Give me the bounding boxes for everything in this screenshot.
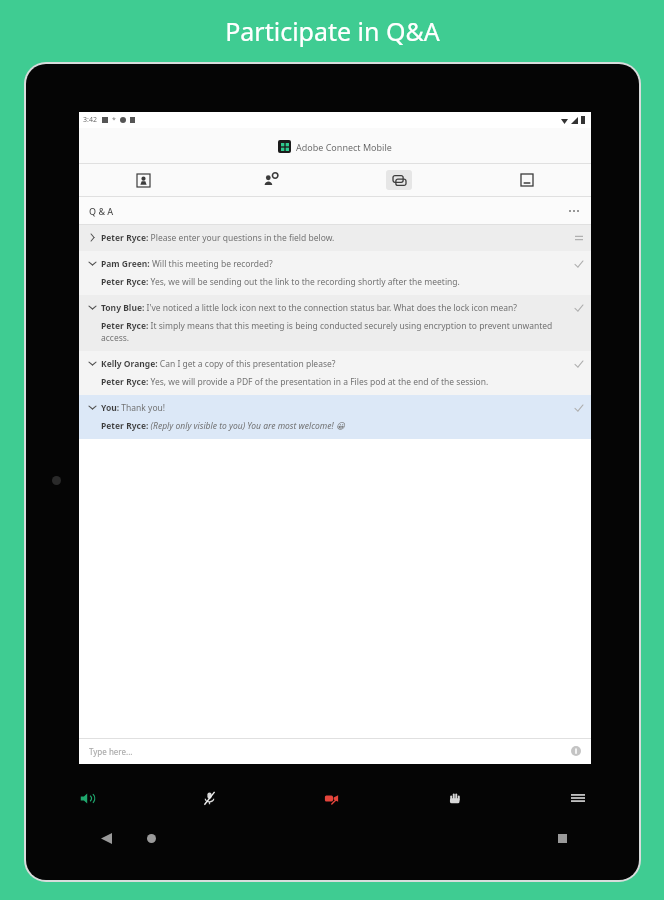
button[interactable]: Recents	[554, 830, 570, 846]
button[interactable]: Notes	[463, 164, 591, 196]
button[interactable]: Raise hand	[393, 774, 516, 822]
staticText: You: Thank you!	[101, 402, 166, 414]
button[interactable]: Microphone off	[148, 774, 270, 822]
staticText: Tony Blue: I've noticed a little lock ic…	[101, 302, 517, 314]
button[interactable]: Tony Blue: I've noticed a little lock ic…	[79, 295, 591, 351]
staticText: *	[112, 115, 116, 125]
staticText: Peter Ryce: (Reply only visible to you) …	[101, 420, 345, 432]
button[interactable]: Peter Ryce: Please enter your questions …	[79, 225, 591, 251]
button[interactable]: Info	[569, 744, 583, 758]
staticText: Adobe Connect Mobile	[296, 141, 392, 153]
staticText: Kelly Orange: Can I get a copy of this p…	[101, 358, 336, 370]
button[interactable]: Speaker	[26, 774, 148, 822]
staticText: Pam Green: Will this meeting be recorded…	[101, 258, 273, 270]
button[interactable]: Pam Green: Will this meeting be recorded…	[79, 251, 591, 295]
button[interactable]: More options	[565, 202, 583, 220]
button[interactable]: Presenters	[207, 164, 335, 196]
button[interactable]: Back	[98, 830, 114, 846]
staticText: Peter Ryce: Please enter your questions …	[101, 232, 335, 244]
button[interactable]: Type here...	[89, 746, 133, 757]
staticText: Peter Ryce: Yes, we will provide a PDF o…	[101, 376, 489, 388]
button[interactable]: Attendees	[79, 164, 207, 196]
button[interactable]: Home	[143, 830, 159, 846]
button[interactable]: Q and A	[335, 164, 463, 196]
staticText: 3:42	[83, 115, 97, 125]
button[interactable]: Camera off	[270, 774, 393, 822]
button[interactable]: Kelly Orange: Can I get a copy of this p…	[79, 351, 591, 395]
staticText: Participate in Q&A	[225, 14, 440, 48]
staticText: Peter Ryce: Yes, we will be sending out …	[101, 276, 460, 288]
button[interactable]: You: Thank you!	[79, 395, 591, 439]
staticText: Q & A	[89, 205, 114, 217]
button[interactable]: Menu	[516, 774, 639, 822]
staticText: Peter Ryce: It simply means that this me…	[101, 320, 569, 344]
